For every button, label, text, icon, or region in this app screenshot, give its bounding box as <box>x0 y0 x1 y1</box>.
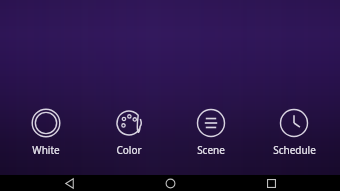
staticText: Schedule <box>273 143 316 157</box>
button[interactable]: Scene <box>174 106 248 159</box>
staticText: White <box>32 143 60 157</box>
button[interactable]: Recents <box>239 175 303 191</box>
button[interactable]: Color <box>92 106 166 159</box>
button[interactable]: White <box>9 106 83 159</box>
staticText: Color <box>116 143 142 157</box>
staticText: Scene <box>197 143 225 157</box>
button[interactable]: Back <box>37 175 101 191</box>
button[interactable]: Schedule <box>257 106 331 159</box>
button[interactable]: Home <box>138 175 202 191</box>
